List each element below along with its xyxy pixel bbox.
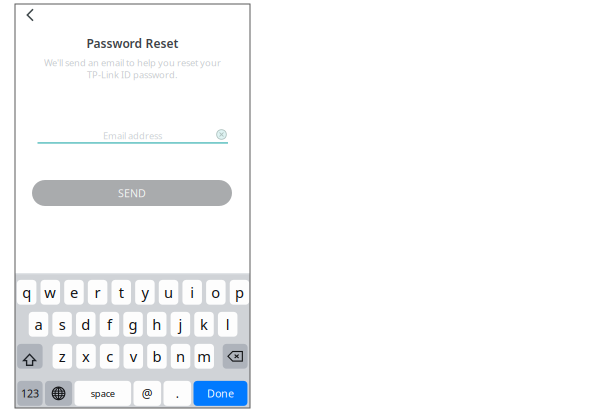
- button[interactable]: @: [133, 381, 161, 406]
- staticText: q: [22, 283, 31, 302]
- button[interactable]: d: [76, 312, 95, 337]
- button[interactable]: s: [52, 312, 72, 337]
- button[interactable]: i: [182, 280, 202, 305]
- staticText: s: [59, 315, 66, 334]
- button[interactable]: n: [171, 344, 190, 369]
- button[interactable]: Done: [193, 381, 247, 406]
- staticText: v: [130, 347, 137, 366]
- button[interactable]: o: [206, 280, 226, 305]
- button[interactable]: p: [230, 280, 249, 305]
- button[interactable]: Shift: [17, 344, 43, 369]
- staticText: l: [226, 315, 230, 334]
- staticText: u: [164, 283, 173, 302]
- button[interactable]: j: [171, 312, 190, 337]
- button[interactable]: a: [29, 312, 48, 337]
- staticText: p: [235, 283, 244, 302]
- staticText: .: [176, 385, 179, 401]
- button[interactable]: l: [218, 312, 237, 337]
- staticText: r: [95, 283, 101, 302]
- staticText: TP-Link ID password.: [87, 68, 178, 81]
- staticText: k: [200, 315, 208, 334]
- button[interactable]: Next keyboard: [45, 381, 72, 406]
- button[interactable]: y: [135, 280, 155, 305]
- staticText: w: [44, 283, 56, 302]
- staticText: space: [91, 387, 115, 400]
- staticText: z: [59, 347, 66, 366]
- staticText: h: [152, 315, 161, 334]
- button[interactable]: Clear text: [215, 128, 228, 141]
- button[interactable]: v: [123, 344, 143, 369]
- staticText: SEND: [118, 186, 146, 200]
- button[interactable]: SEND: [32, 180, 232, 206]
- staticText: y: [141, 283, 148, 302]
- staticText: n: [176, 347, 185, 366]
- button[interactable]: h: [147, 312, 166, 337]
- staticText: b: [152, 347, 161, 366]
- button[interactable]: t: [111, 280, 131, 305]
- button[interactable]: Back: [15, 4, 45, 30]
- button[interactable]: z: [53, 344, 72, 369]
- staticText: @: [142, 385, 153, 401]
- button[interactable]: w: [40, 280, 60, 305]
- staticText: e: [70, 283, 78, 302]
- staticText: g: [129, 315, 138, 334]
- staticText: d: [81, 315, 90, 334]
- staticText: o: [211, 283, 220, 302]
- button[interactable]: m: [194, 344, 214, 369]
- button[interactable]: x: [76, 344, 96, 369]
- staticText: i: [190, 283, 194, 302]
- button[interactable]: q: [17, 280, 36, 305]
- staticText: Done: [207, 386, 234, 400]
- button[interactable]: .: [163, 381, 191, 406]
- staticText: j: [178, 315, 182, 334]
- button[interactable]: c: [100, 344, 119, 369]
- button[interactable]: Delete: [223, 344, 248, 369]
- staticText: m: [197, 347, 211, 366]
- button[interactable]: r: [88, 280, 107, 305]
- button[interactable]: u: [159, 280, 178, 305]
- staticText: Password Reset: [86, 35, 178, 51]
- staticText: t: [119, 283, 124, 302]
- button[interactable]: f: [100, 312, 119, 337]
- staticText: 123: [21, 386, 39, 400]
- staticText: x: [82, 347, 90, 366]
- staticText: Email address: [103, 129, 162, 142]
- button[interactable]: b: [147, 344, 167, 369]
- button[interactable]: space: [74, 381, 131, 406]
- button[interactable]: e: [64, 280, 84, 305]
- button[interactable]: 123: [17, 381, 43, 406]
- staticText: c: [106, 347, 113, 366]
- staticText: a: [34, 315, 42, 334]
- button[interactable]: k: [194, 312, 214, 337]
- staticText: f: [107, 315, 112, 334]
- staticText: We'll send an email to help you reset yo…: [44, 56, 221, 69]
- button[interactable]: g: [123, 312, 143, 337]
